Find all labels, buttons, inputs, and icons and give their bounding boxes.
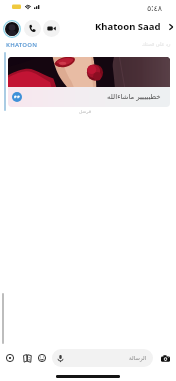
button[interactable]: Audio call bbox=[24, 20, 41, 37]
button[interactable]: Take photo bbox=[159, 352, 171, 364]
button[interactable]: Stickers bbox=[36, 352, 48, 364]
button[interactable]: Camera bbox=[4, 352, 16, 364]
button[interactable]: خطييييير ماشاءالله bbox=[8, 87, 170, 107]
staticText: مُرسل bbox=[79, 109, 92, 114]
staticText: خطييييير ماشاءالله bbox=[107, 92, 161, 102]
button[interactable]: Profile picture bbox=[3, 20, 21, 38]
button[interactable]: Video call bbox=[43, 20, 60, 37]
staticText: الرسالة bbox=[129, 355, 147, 361]
button[interactable]: Open profile bbox=[166, 22, 176, 32]
button[interactable]: Khatoon Saad bbox=[95, 20, 161, 33]
button[interactable]: Gallery bbox=[21, 352, 33, 364]
button[interactable]: Story photo bbox=[8, 57, 170, 87]
staticText: ٥:٤٨ bbox=[147, 2, 163, 13]
button[interactable]: Voice message bbox=[56, 354, 65, 363]
staticText: رد على قصتك bbox=[142, 41, 171, 48]
button[interactable]: Voice message bbox=[52, 349, 153, 367]
staticText: KHATOON bbox=[6, 41, 38, 49]
